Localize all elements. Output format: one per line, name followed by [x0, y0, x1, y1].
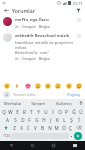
button[interactable]: Geri — [0, 141, 22, 150]
button[interactable]: L — [61, 116, 68, 123]
button[interactable]: Paylaş — [66, 92, 82, 98]
button[interactable]: Kullanıcı — [51, 99, 77, 107]
button[interactable]: Emoji — [34, 82, 41, 89]
button[interactable]: Z — [11, 124, 18, 131]
staticText: Ş — [70, 117, 73, 123]
staticText: R — [23, 109, 26, 115]
button[interactable]: Büyük harf — [1, 124, 11, 131]
button[interactable]: Cevapla — [22, 24, 36, 29]
button[interactable]: X — [18, 124, 25, 131]
button[interactable]: W — [7, 108, 14, 115]
staticText: T — [30, 109, 33, 115]
staticText: O — [58, 109, 62, 115]
button[interactable]: M — [53, 124, 60, 131]
button[interactable]: T — [28, 108, 35, 115]
button[interactable]: F — [26, 116, 33, 123]
staticText: L — [63, 117, 66, 123]
button[interactable]: Emoji — [75, 82, 82, 89]
staticText: Y — [37, 109, 40, 115]
staticText: 21:11 — [73, 1, 83, 6]
button[interactable]: Q — [1, 108, 7, 115]
button[interactable]: V — [32, 124, 39, 131]
staticText: Ç — [69, 125, 72, 131]
button[interactable]: Beğen — [76, 17, 82, 23]
button[interactable]: Beğen — [76, 33, 82, 39]
staticText: Ü — [79, 109, 83, 115]
button[interactable]: D — [19, 116, 26, 123]
button[interactable]: C — [25, 124, 32, 131]
staticText: Ö — [62, 125, 66, 131]
staticText: B — [41, 125, 44, 131]
button[interactable]: Ş — [68, 116, 75, 123]
button[interactable]: Emoji — [65, 82, 72, 89]
button[interactable]: E — [14, 108, 21, 115]
button[interactable]: G — [33, 116, 40, 123]
button[interactable]: Cevapla — [22, 56, 36, 61]
staticText: Yorum ekle… — [13, 92, 39, 98]
button[interactable]: B — [39, 124, 46, 131]
button[interactable]: Beğen — [39, 56, 50, 61]
staticText: Ğ — [72, 109, 76, 115]
button[interactable]: zekkedilr Beoschool müzik — [0, 30, 85, 62]
button[interactable]: İ — [75, 116, 82, 123]
button[interactable]: H — [40, 116, 47, 123]
button[interactable]: Emoji — [54, 82, 61, 89]
button[interactable]: mefYu_ega Özcu — [0, 14, 85, 30]
button[interactable]: P — [63, 108, 70, 115]
button[interactable]: ?123 — [2, 132, 11, 140]
button[interactable]: Ana ekran — [22, 141, 43, 150]
button[interactable]: Emoji — [13, 82, 20, 89]
button[interactable]: I — [49, 108, 56, 115]
button[interactable]: Merhaba — [0, 99, 25, 107]
button[interactable]: Ç — [67, 124, 74, 131]
button[interactable]: Emoji — [3, 82, 10, 89]
button[interactable]: J — [47, 116, 54, 123]
button[interactable]: Emoji — [44, 82, 51, 89]
staticText: Beğen — [39, 56, 50, 61]
staticText: D — [21, 117, 25, 123]
button[interactable]: A — [3, 116, 11, 123]
button[interactable]: Beğen — [39, 24, 50, 29]
staticText: N — [48, 125, 52, 131]
staticText: M — [54, 125, 59, 131]
button[interactable]: Ü — [77, 108, 84, 115]
staticText: Paylaş — [67, 92, 81, 98]
staticText: Merhaba — [4, 101, 21, 106]
button[interactable] — [69, 132, 74, 140]
staticText: H — [42, 117, 46, 123]
button[interactable]: N — [46, 124, 53, 131]
button[interactable]: S — [11, 116, 19, 123]
staticText: hazırlıklar, etkinlik ve projelerin irti… — [15, 40, 74, 55]
button[interactable]: Yorum ekle… — [13, 92, 66, 98]
button[interactable]: Emoji — [24, 82, 31, 89]
staticText: Beğen — [39, 24, 50, 29]
button[interactable]: U — [42, 108, 49, 115]
button[interactable]: Ö — [60, 124, 67, 131]
staticText: İ — [78, 117, 80, 123]
staticText: Z — [13, 125, 16, 131]
button[interactable]: Y — [35, 108, 42, 115]
staticText: 2s — [15, 24, 19, 29]
button[interactable]: O — [56, 108, 63, 115]
button[interactable]: Klavyeyi kapat — [64, 141, 85, 150]
button[interactable]: K — [54, 116, 61, 123]
staticText: K — [56, 117, 59, 123]
staticText: mefYu_ega Özcu — [15, 17, 49, 23]
staticText: W — [8, 109, 13, 115]
staticText: ?123 — [3, 134, 10, 138]
button[interactable]: Son kullanılanlar — [43, 141, 64, 150]
staticText: Tamam — [31, 101, 45, 106]
staticText: zekkedilr Beoschool müzik — [15, 33, 70, 39]
button[interactable]: Sil — [74, 124, 84, 131]
button[interactable]: R — [21, 108, 28, 115]
button[interactable]: Ğ — [70, 108, 77, 115]
button[interactable]: Gönder — [74, 132, 82, 140]
button[interactable]: Tamam — [25, 99, 51, 107]
button[interactable]: Sesle yaz — [77, 99, 85, 107]
button[interactable]: Sırala — [75, 7, 82, 14]
staticText: Q — [2, 109, 6, 115]
staticText: Cevapla — [22, 56, 36, 61]
staticText: S — [14, 117, 17, 123]
button[interactable]: Geri — [3, 7, 10, 14]
